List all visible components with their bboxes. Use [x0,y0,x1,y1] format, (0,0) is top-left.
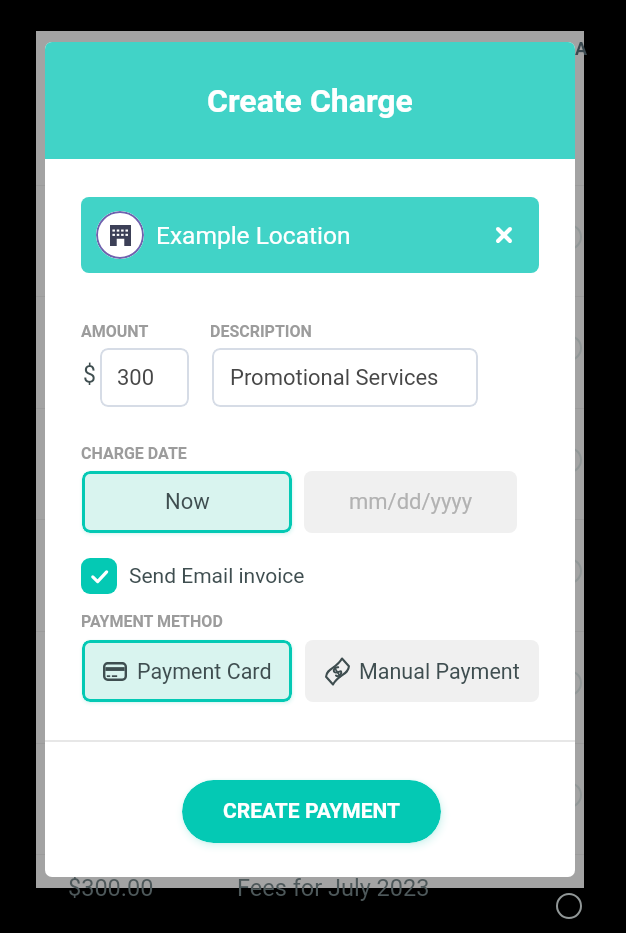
staticText: AMOUNT [81,322,149,341]
staticText: mm/dd/yyyy [349,489,473,515]
staticText: $300.00 [68,874,154,902]
staticText: Promotional Services [230,365,439,391]
button[interactable]: Example Location [81,197,539,273]
staticText: $ [83,362,96,389]
staticText: Now [165,489,210,515]
button[interactable]: Clear location [482,213,526,257]
button[interactable]: Promotional Services [212,348,478,407]
staticText: Send Email invoice [129,564,305,589]
button[interactable]: Now [82,471,292,533]
staticText: 300 [117,365,155,391]
button[interactable]: 300 [100,348,189,407]
staticText: PAYMENT METHOD [81,612,223,631]
staticText: DESCRIPTION [210,322,312,341]
staticText: Example Location [156,221,351,250]
staticText: CREATE PAYMENT [223,799,400,824]
button[interactable]: CREATE PAYMENT [182,780,441,843]
button[interactable]: mm/dd/yyyy [304,471,517,533]
button[interactable]: Send Email invoice [81,556,305,596]
button[interactable]: Manual Payment [305,640,539,702]
staticText: Create Charge [207,82,413,120]
staticText: Payment Card [137,659,272,684]
staticText: CHARGE DATE [81,444,187,463]
staticText: A [575,38,588,59]
staticText: Manual Payment [359,659,520,684]
button[interactable]: Payment Card [82,640,292,702]
staticText: Fees for July 2023 [237,874,430,902]
